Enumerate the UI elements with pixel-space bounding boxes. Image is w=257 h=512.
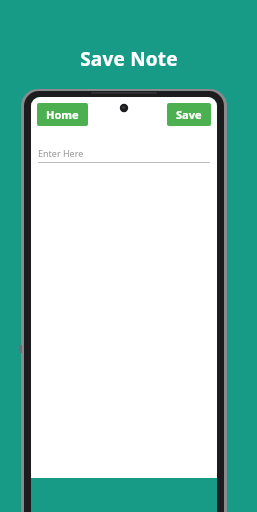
button[interactable]: Enter Here [38, 147, 210, 163]
staticText: Enter Here [38, 147, 84, 159]
staticText: Save Note [80, 46, 178, 72]
staticText: Save [176, 107, 202, 122]
button[interactable]: Home [37, 103, 88, 126]
button[interactable]: Save [167, 103, 211, 126]
staticText: Home [46, 107, 79, 122]
